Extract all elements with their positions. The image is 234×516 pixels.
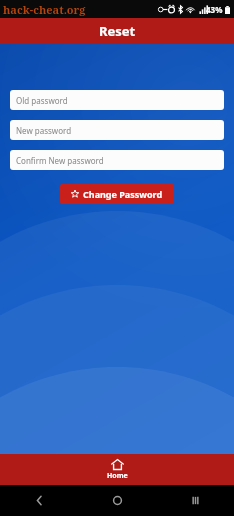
staticText: hack-cheat.org xyxy=(3,2,86,17)
staticText: New password xyxy=(16,125,72,136)
button[interactable]: Home xyxy=(0,454,234,485)
button[interactable]: Confirm New password xyxy=(10,150,224,170)
staticText: Home xyxy=(107,471,128,481)
staticText: Reset xyxy=(99,22,136,40)
button[interactable]: Change Password xyxy=(60,184,174,204)
button[interactable]: Old password xyxy=(10,90,224,110)
staticText: Old password xyxy=(16,95,68,106)
button[interactable]: home xyxy=(78,485,156,516)
button[interactable]: recents xyxy=(156,485,234,516)
staticText: Change Password xyxy=(83,188,163,200)
staticText: Confirm New password xyxy=(16,155,104,166)
button[interactable]: New password xyxy=(10,120,224,140)
button[interactable]: back xyxy=(0,485,78,516)
staticText: 43% xyxy=(206,4,223,15)
